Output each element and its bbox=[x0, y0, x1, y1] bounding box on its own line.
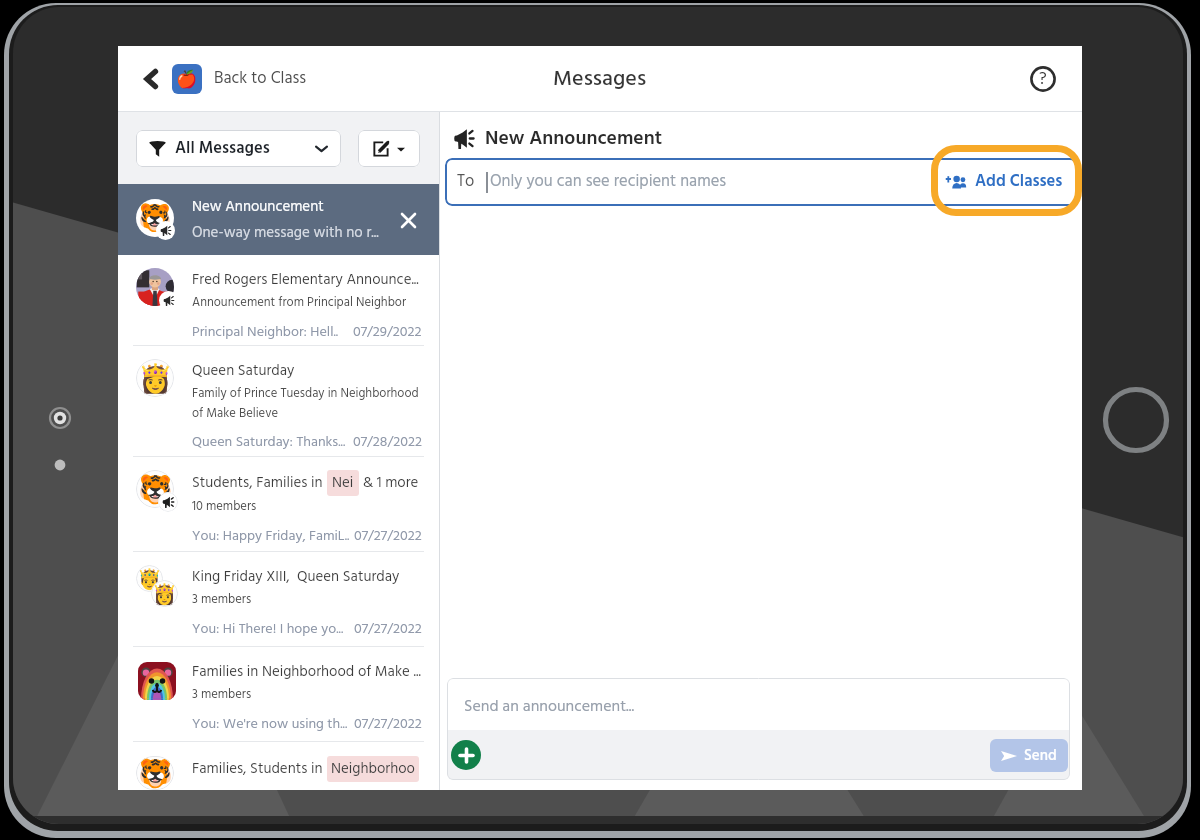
staticText: 🤴 bbox=[137, 567, 162, 590]
staticText: Send an announcement... bbox=[464, 694, 635, 720]
button[interactable]: Back to Class bbox=[140, 58, 317, 100]
button[interactable]: Fred Rogers Elementary Announce... bbox=[118, 255, 439, 346]
staticText: 🐯 bbox=[138, 757, 173, 790]
button[interactable]: 👸 bbox=[118, 346, 439, 457]
staticText: Fred Rogers Elementary Announce... bbox=[192, 268, 419, 292]
staticText: To bbox=[457, 169, 475, 195]
staticText: Nei bbox=[332, 471, 354, 495]
button[interactable]: Add attachment bbox=[451, 740, 481, 770]
staticText: 07/27/2022 bbox=[354, 713, 422, 736]
button[interactable]: 🤴 bbox=[118, 552, 439, 647]
staticText: 🍎 bbox=[176, 69, 198, 89]
staticText: Families in Neighborhood of Make ... bbox=[192, 660, 421, 684]
staticText: Back to Class bbox=[214, 66, 307, 92]
button[interactable]: Add Classes bbox=[893, 158, 1077, 206]
staticText: Queen Saturday: Thanks... bbox=[192, 431, 353, 454]
staticText: King Friday XIII, Queen Saturday bbox=[192, 565, 400, 589]
staticText: 07/29/2022 bbox=[353, 321, 422, 344]
staticText: 07/27/2022 bbox=[354, 618, 422, 641]
button[interactable]: Send bbox=[990, 739, 1068, 772]
staticText: & 1 more bbox=[359, 471, 419, 495]
staticText: 🐯 bbox=[138, 473, 173, 506]
staticText: Only you can see recipient names bbox=[490, 169, 727, 195]
staticText: Messages bbox=[553, 62, 647, 97]
staticText: Add Classes bbox=[975, 169, 1063, 195]
staticText: Announcement from Principal Neighbor bbox=[192, 293, 407, 313]
staticText: New Announcement bbox=[192, 195, 324, 219]
staticText: 🐯 bbox=[138, 202, 172, 234]
staticText: 3 members bbox=[192, 590, 252, 610]
staticText: Family of Prince Tuesday in Neighborhood… bbox=[192, 384, 422, 423]
staticText: Send bbox=[1024, 744, 1057, 768]
staticText: 3 members bbox=[192, 685, 252, 705]
staticText: All Messages bbox=[175, 136, 270, 162]
staticText: 👸 bbox=[138, 362, 173, 395]
button[interactable]: 🐯 bbox=[118, 184, 439, 255]
button[interactable]: All Messages bbox=[136, 130, 341, 167]
staticText: You: Happy Friday, FamiL.. bbox=[192, 525, 354, 548]
staticText: Students, Families in bbox=[192, 471, 327, 495]
staticText: 👸 bbox=[152, 582, 177, 605]
staticText: 07/27/2022 bbox=[354, 525, 422, 548]
staticText: New Announcement bbox=[485, 123, 663, 154]
button[interactable]: Help bbox=[1026, 62, 1060, 96]
staticText: 10 members bbox=[192, 497, 257, 517]
staticText: You: We're now using th... bbox=[192, 713, 354, 736]
button[interactable]: Families in Neighborhood of Make ... bbox=[118, 647, 439, 742]
staticText: ? bbox=[1039, 66, 1047, 93]
staticText: Families, Students in bbox=[192, 757, 327, 781]
staticText: One-way message with no r... bbox=[192, 221, 379, 245]
button[interactable]: 🐯 bbox=[118, 457, 439, 552]
staticText: Neighborhoo bbox=[331, 757, 415, 781]
button[interactable]: Compose message bbox=[358, 130, 420, 167]
staticText: 07/28/2022 bbox=[353, 431, 422, 454]
staticText: Queen Saturday bbox=[192, 359, 295, 383]
button[interactable]: 🐯 bbox=[118, 742, 439, 790]
staticText: Principal Neighbor: Hell.. bbox=[192, 321, 353, 344]
staticText: You: Hi There! I hope yo... bbox=[192, 618, 354, 641]
button[interactable]: Dismiss bbox=[395, 207, 421, 233]
